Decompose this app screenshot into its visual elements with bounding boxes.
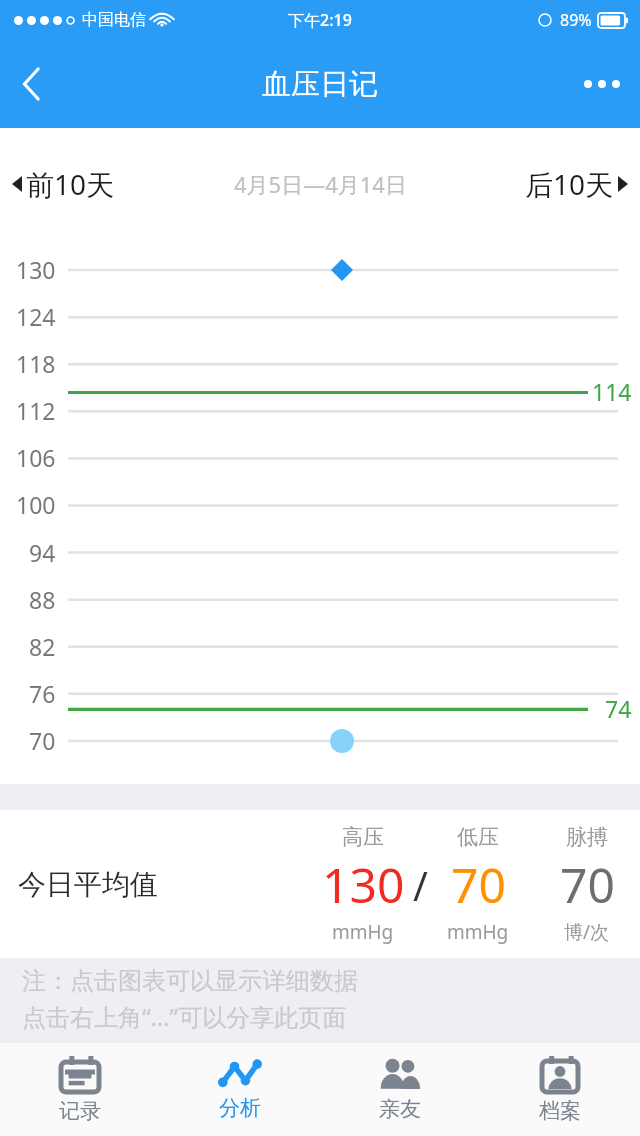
staticText: 高压 <box>342 824 384 850</box>
staticText: 100 <box>16 489 56 520</box>
button[interactable]: 亲友 <box>320 1043 480 1136</box>
staticText: 112 <box>16 395 56 426</box>
button[interactable]: 后10天 <box>525 157 628 211</box>
staticText: 130 <box>16 254 56 285</box>
staticText: 分析 <box>219 1095 261 1121</box>
staticText: 124 <box>16 301 56 332</box>
staticText: / <box>413 858 428 912</box>
staticText: 89% <box>560 9 592 31</box>
button[interactable]: 今日平均值 <box>0 810 640 958</box>
staticText: 低压 <box>457 824 499 850</box>
staticText: 血压日记 <box>262 66 378 103</box>
staticText: mmHg <box>447 919 509 945</box>
staticText: 4月5日—4月14日 <box>234 169 407 199</box>
staticText: 82 <box>29 631 56 662</box>
staticText: 74 <box>605 693 632 724</box>
staticText: 中国电信 <box>82 10 146 30</box>
button[interactable]: 分析 <box>160 1043 320 1136</box>
button[interactable]: More options <box>564 40 640 128</box>
staticText: 档案 <box>539 1098 581 1124</box>
staticText: 76 <box>29 678 56 709</box>
staticText: 亲友 <box>379 1096 421 1122</box>
staticText: 前10天 <box>26 165 115 203</box>
staticText: 70 <box>560 852 615 917</box>
button[interactable]: Back <box>0 40 64 128</box>
staticText: 记录 <box>59 1098 101 1124</box>
button[interactable]: 档案 <box>480 1043 640 1136</box>
staticText: 106 <box>16 442 56 473</box>
button[interactable]: 前10天 <box>12 157 115 211</box>
staticText: 70 <box>29 725 56 756</box>
staticText: 点击右上角“…”可以分享此页面 <box>22 1000 347 1033</box>
staticText: 114 <box>592 376 632 407</box>
staticText: 下午2:19 <box>288 9 352 31</box>
staticText: 博/次 <box>564 919 610 945</box>
staticText: 今日平均值 <box>18 867 158 902</box>
staticText: 70 <box>451 852 506 917</box>
button[interactable]: 记录 <box>0 1043 160 1136</box>
staticText: 94 <box>29 537 56 568</box>
button[interactable]: 130 <box>0 240 640 784</box>
staticText: mmHg <box>332 919 394 945</box>
staticText: 注：点击图表可以显示详细数据 <box>22 966 358 996</box>
staticText: 脉搏 <box>566 824 608 850</box>
staticText: 130 <box>322 852 405 917</box>
staticText: 后10天 <box>525 165 614 203</box>
staticText: 118 <box>16 348 56 379</box>
staticText: 88 <box>29 584 56 615</box>
